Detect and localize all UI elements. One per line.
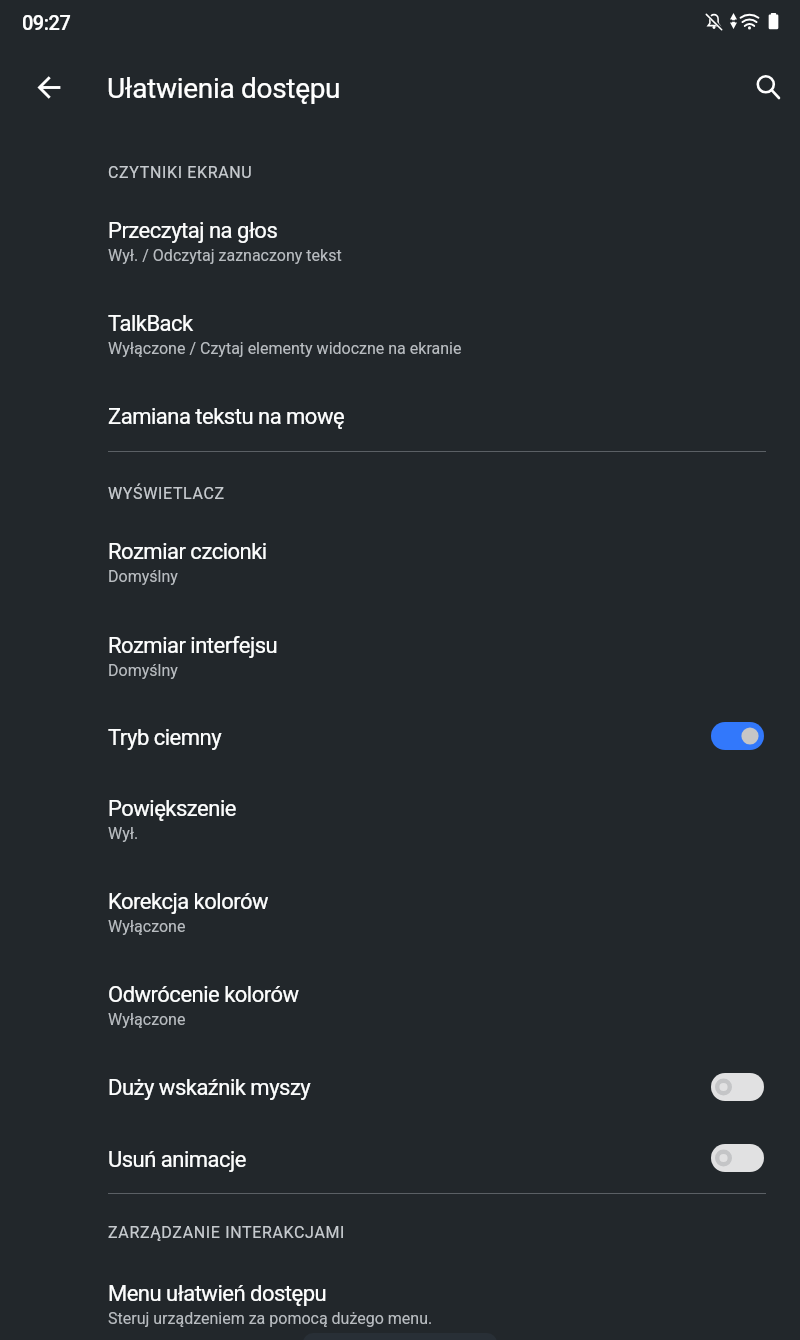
button[interactable]: Duży wskaźnik myszy [0,1051,800,1122]
staticText: TalkBack [108,311,193,337]
staticText: Usuń animacje [108,1147,247,1173]
staticText: Domyślny [108,567,178,586]
staticText: Wył. [108,824,139,843]
staticText: Steruj urządzeniem za pomocą dużego menu… [108,1309,433,1328]
staticText: Ułatwienia dostępu [107,72,341,105]
button[interactable]: Zamiana tekstu na mowę [0,380,800,451]
staticText: 09:27 [22,11,71,34]
staticText: Rozmiar interfejsu [108,633,278,659]
staticText: ZARZĄDZANIE INTERAKCJAMI [108,1223,346,1242]
staticText: Wyłączone [108,1010,186,1029]
button[interactable]: Tryb ciemny [0,701,800,772]
staticText: Przeczytaj na głos [108,218,278,244]
button[interactable]: TalkBack [0,287,800,380]
staticText: Wyłączone / Czytaj elementy widoczne na … [108,339,462,358]
staticText: Wył. / Odczytaj zaznaczony tekst [108,246,342,265]
button[interactable]: Menu ułatwień dostępu [0,1257,800,1340]
button[interactable]: Usuń animacje [0,1123,800,1194]
staticText: WYŚWIETLACZ [108,484,225,503]
button[interactable]: Back [25,63,74,112]
staticText: Zamiana tekstu na mowę [108,404,345,430]
staticText: CZYTNIKI EKRANU [108,163,253,182]
staticText: Domyślny [108,661,178,680]
button[interactable]: Switch on [711,722,764,750]
button[interactable]: Rozmiar interfejsu [0,609,800,702]
staticText: Powiększenie [108,796,236,822]
button[interactable]: Rozmiar czcionki [0,515,800,609]
staticText: Wyłączone [108,917,186,936]
staticText: Duży wskaźnik myszy [108,1075,311,1101]
button[interactable]: Odwrócenie kolorów [0,958,800,1052]
staticText: Menu ułatwień dostępu [108,1281,327,1307]
button[interactable]: Switch off [711,1144,764,1172]
staticText: Korekcja kolorów [108,889,269,915]
staticText: Tryb ciemny [108,725,222,751]
button[interactable]: Powiększenie [0,772,800,865]
button[interactable]: Switch off [711,1073,764,1101]
staticText: Rozmiar czcionki [108,539,267,565]
button[interactable]: Korekcja kolorów [0,865,800,958]
button[interactable]: Przeczytaj na głos [0,194,800,287]
staticText: Odwrócenie kolorów [108,982,299,1008]
button[interactable]: Search [743,63,792,112]
